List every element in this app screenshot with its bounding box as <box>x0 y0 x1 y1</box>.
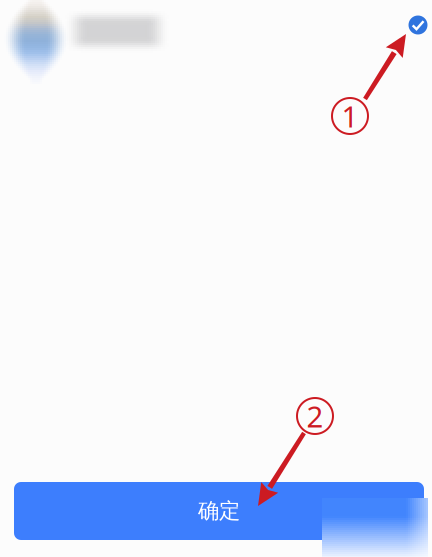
staticText: 1 <box>341 96 358 135</box>
button[interactable]: 确定 <box>14 482 424 540</box>
staticText: 确定 <box>198 498 240 524</box>
staticText: 2 <box>306 396 323 435</box>
button[interactable] <box>0 0 432 92</box>
